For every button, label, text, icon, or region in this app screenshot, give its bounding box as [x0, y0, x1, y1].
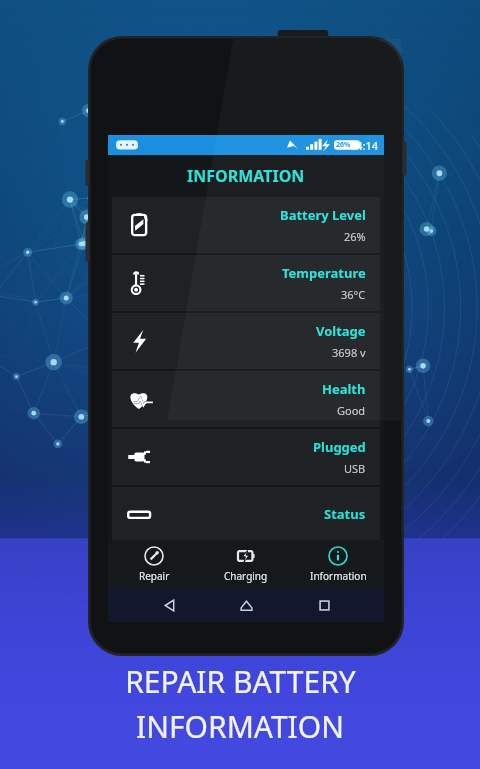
- staticText: Battery Level: [280, 206, 366, 224]
- staticText: 36°C: [341, 287, 366, 302]
- button[interactable]: Recent apps: [307, 588, 341, 622]
- staticText: INFORMATION: [136, 706, 344, 747]
- staticText: 3698 v: [332, 345, 366, 360]
- staticText: Voltage: [316, 322, 366, 340]
- button[interactable]: Voltage: [112, 313, 380, 369]
- button[interactable]: Back: [152, 588, 186, 622]
- staticText: Information: [310, 569, 367, 583]
- button[interactable]: Battery Level: [112, 197, 380, 253]
- staticText: Repair: [139, 569, 170, 583]
- staticText: Health: [322, 380, 366, 398]
- button[interactable]: Temperature: [112, 255, 380, 311]
- staticText: 26%: [344, 229, 366, 244]
- staticText: REPAIR BATTERY: [125, 661, 356, 702]
- staticText: 14:14: [350, 138, 379, 153]
- button[interactable]: Information: [292, 540, 384, 588]
- staticText: Status: [324, 505, 366, 523]
- staticText: Good: [337, 403, 366, 418]
- button[interactable]: Charging: [200, 540, 292, 588]
- staticText: Temperature: [282, 264, 366, 282]
- button[interactable]: Home: [229, 588, 263, 622]
- button[interactable]: Health: [112, 371, 380, 427]
- staticText: Charging: [224, 569, 268, 583]
- button[interactable]: Plugged: [112, 429, 380, 485]
- button[interactable]: Repair: [108, 540, 200, 588]
- staticText: 26%: [336, 140, 351, 150]
- staticText: Plugged: [313, 438, 366, 456]
- button[interactable]: Status: [112, 487, 380, 540]
- staticText: INFORMATION: [187, 165, 305, 187]
- staticText: USB: [344, 461, 366, 476]
